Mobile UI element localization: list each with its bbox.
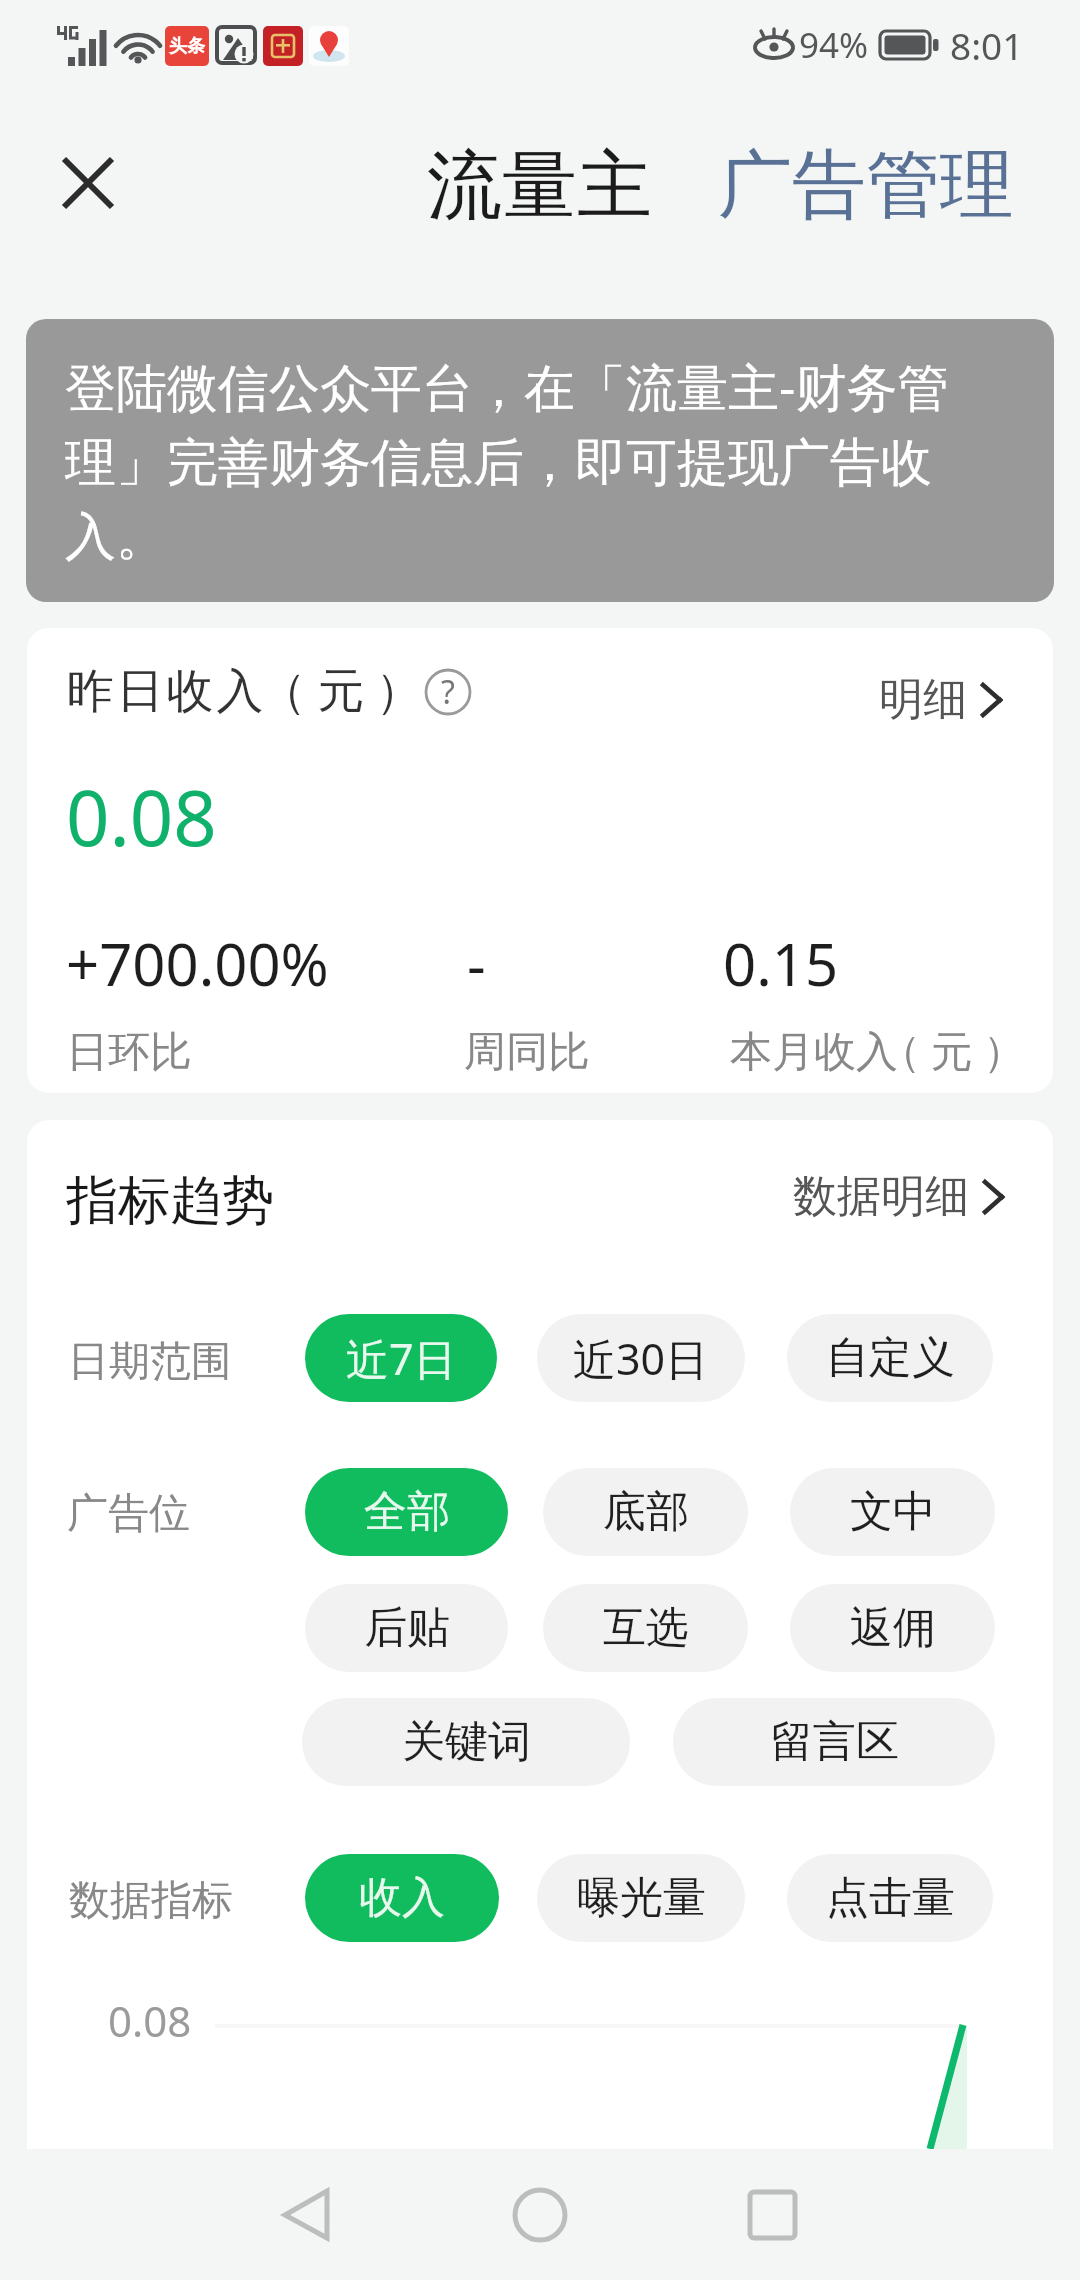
staticText: 留言区 xyxy=(770,1715,899,1769)
button[interactable]: 数据明细 xyxy=(793,1169,1007,1224)
button[interactable]: 近30日 xyxy=(537,1314,745,1402)
button[interactable]: 留言区 xyxy=(673,1698,995,1786)
staticText: 0.08 xyxy=(108,1992,192,2049)
button[interactable]: Close xyxy=(40,135,136,231)
button[interactable]: 全部 xyxy=(305,1468,508,1556)
staticText: 文中 xyxy=(850,1485,936,1539)
button[interactable]: 曝光量 xyxy=(537,1854,745,1942)
button[interactable]: 点击量 xyxy=(787,1854,993,1942)
staticText: 数据指标 xyxy=(69,1875,233,1927)
staticText: 近7日 xyxy=(346,1329,457,1388)
button[interactable]: Recent apps xyxy=(682,2155,862,2275)
staticText: 0.08 xyxy=(66,765,217,869)
button[interactable]: Back xyxy=(218,2155,398,2275)
staticText: 头条 xyxy=(169,35,205,58)
staticText: 关键词 xyxy=(402,1715,531,1769)
button[interactable]: Help xyxy=(421,665,475,719)
staticText: 自定义 xyxy=(826,1331,955,1385)
staticText: ? xyxy=(441,670,455,714)
staticText: 昨日收入 xyxy=(65,662,265,721)
staticText: - xyxy=(467,924,486,1003)
staticText: 收入 xyxy=(359,1871,445,1925)
staticText: 曝光量 xyxy=(577,1871,706,1925)
button[interactable]: 文中 xyxy=(790,1468,995,1556)
staticText: 广告管理 xyxy=(718,139,1014,232)
staticText: 指标趋势 xyxy=(66,1168,274,1234)
staticText: 广告位 xyxy=(67,1488,190,1540)
button[interactable]: 底部 xyxy=(543,1468,748,1556)
button[interactable]: 近7日 xyxy=(305,1314,497,1402)
button[interactable]: 登陆微信公众平台，在「流量主-财务管理」完善财务信息后，即可提现广告收入。 xyxy=(26,319,1054,602)
staticText: 日环比 xyxy=(66,1026,192,1079)
staticText: 流量主 xyxy=(427,139,652,233)
staticText: +700.00% xyxy=(66,924,329,1003)
staticText: 近30日 xyxy=(573,1329,709,1388)
staticText: 点击量 xyxy=(826,1871,955,1925)
staticText: （元） xyxy=(254,662,428,721)
staticText: 底部 xyxy=(603,1485,689,1539)
staticText: 登陆微信公众平台，在「流量主-财务管理」完善财务信息后，即可提现广告收入。 xyxy=(65,348,975,573)
button[interactable]: 后贴 xyxy=(305,1584,508,1672)
staticText: 8:01 xyxy=(950,20,1024,70)
staticText: 全部 xyxy=(364,1485,450,1539)
staticText: （元） xyxy=(874,1026,1030,1079)
staticText: 返佣 xyxy=(850,1601,936,1655)
staticText: 明细 xyxy=(879,672,967,727)
button[interactable]: 返佣 xyxy=(790,1584,995,1672)
staticText: 日期范围 xyxy=(68,1336,232,1388)
button[interactable]: 互选 xyxy=(543,1584,748,1672)
staticText: 数据明细 xyxy=(793,1169,969,1224)
staticText: 互选 xyxy=(603,1601,689,1655)
staticText: 本月收入 xyxy=(730,1026,898,1079)
staticText: 94% xyxy=(799,21,869,69)
button[interactable]: 明细 xyxy=(879,672,1005,727)
button[interactable]: 自定义 xyxy=(787,1314,993,1402)
button[interactable]: Home xyxy=(450,2155,630,2275)
button[interactable]: 关键词 xyxy=(302,1698,630,1786)
staticText: 0.15 xyxy=(723,924,839,1003)
staticText: 后贴 xyxy=(364,1601,450,1655)
staticText: 周同比 xyxy=(464,1026,590,1079)
button[interactable]: 收入 xyxy=(305,1854,499,1942)
